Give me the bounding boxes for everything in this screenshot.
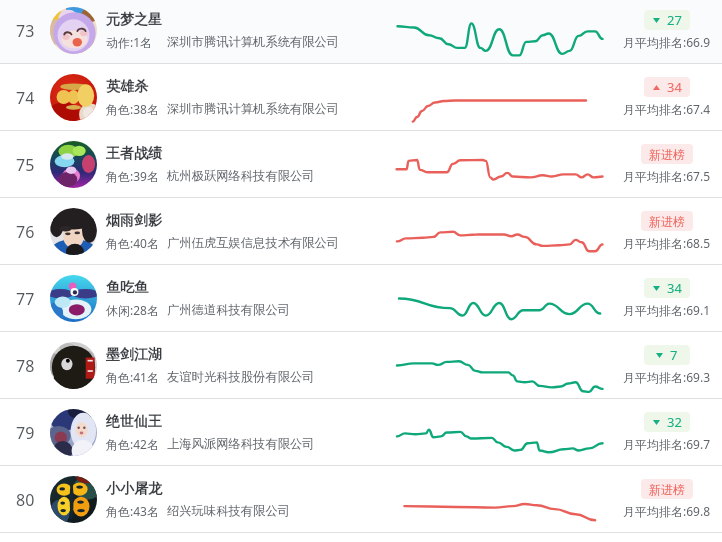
staticText: 月平均排名:68.5	[623, 235, 711, 251]
button[interactable]: 小小屠龙	[106, 480, 162, 498]
staticText: 角色:41名	[106, 369, 159, 385]
button[interactable]: 32	[644, 412, 690, 432]
staticText: 77	[16, 288, 35, 310]
staticText: 角色:38名	[106, 101, 159, 117]
button[interactable]: 绝世仙王	[106, 413, 162, 431]
button[interactable]: 墨剑江湖	[106, 346, 162, 364]
button[interactable]: 76	[0, 198, 722, 265]
staticText: 34	[667, 279, 682, 297]
button[interactable]: 绝世仙王 图标	[50, 409, 97, 456]
button[interactable]: 79	[0, 399, 722, 466]
button[interactable]: 新进榜	[641, 479, 693, 499]
button[interactable]: 元梦之星 图标	[50, 7, 97, 54]
staticText: 76	[16, 221, 35, 243]
button[interactable]: 75	[0, 131, 722, 198]
button[interactable]: 鱼吃鱼 图标	[50, 275, 97, 322]
staticText: 角色:43名	[106, 503, 159, 519]
button[interactable]: 34	[644, 278, 690, 298]
staticText: 79	[16, 422, 35, 444]
staticText: 月平均排名:67.5	[623, 168, 711, 184]
staticText: 上海风派网络科技有限公司	[167, 436, 315, 451]
button[interactable]: 78	[0, 332, 722, 399]
staticText: 友谊时光科技股份有限公司	[167, 369, 315, 384]
button[interactable]: 27	[644, 10, 690, 30]
button[interactable]: 墨剑江湖 图标	[50, 342, 97, 389]
staticText: 新进榜	[649, 482, 685, 497]
staticText: 墨剑江湖	[106, 346, 162, 364]
staticText: 广州伍虎互娱信息技术有限公司	[167, 235, 340, 250]
button[interactable]: 7	[644, 345, 690, 365]
staticText: 月平均排名:66.9	[623, 34, 711, 50]
button[interactable]: 73	[0, 0, 722, 64]
button[interactable]: 英雄杀	[106, 78, 148, 96]
staticText: 角色:42名	[106, 436, 159, 452]
staticText: 80	[16, 489, 35, 511]
button[interactable]: 新进榜	[641, 211, 693, 231]
staticText: 月平均排名:69.7	[623, 436, 711, 452]
staticText: 英雄杀	[106, 78, 148, 96]
staticText: 元梦之星	[106, 11, 162, 29]
staticText: 78	[16, 355, 35, 377]
staticText: 7	[670, 346, 678, 364]
staticText: 休闲:28名	[106, 302, 159, 318]
staticText: 烟雨剑影	[106, 212, 162, 230]
staticText: 动作:1名	[106, 34, 153, 50]
button[interactable]: 鱼吃鱼	[106, 279, 148, 297]
staticText: 绍兴玩味科技有限公司	[167, 503, 290, 518]
staticText: 27	[667, 11, 682, 29]
staticText: 王者战绩	[106, 145, 162, 163]
button[interactable]: 王者战绩 图标	[50, 141, 97, 188]
staticText: 74	[16, 87, 35, 109]
button[interactable]: 新进榜	[641, 144, 693, 164]
staticText: 鱼吃鱼	[106, 279, 148, 297]
staticText: 月平均排名:69.1	[623, 302, 711, 318]
staticText: 月平均排名:69.8	[623, 503, 711, 519]
button[interactable]: 74	[0, 64, 722, 131]
button[interactable]: 77	[0, 265, 722, 332]
staticText: 新进榜	[649, 147, 685, 162]
button[interactable]: 小小屠龙 图标	[50, 476, 97, 523]
staticText: 角色:40名	[106, 235, 159, 251]
staticText: 月平均排名:67.4	[623, 101, 711, 117]
staticText: 75	[16, 154, 35, 176]
button[interactable]: 王者战绩	[106, 145, 162, 163]
button[interactable]: 烟雨剑影	[106, 212, 162, 230]
button[interactable]: 34	[644, 77, 690, 97]
staticText: 小小屠龙	[106, 480, 162, 498]
staticText: 73	[16, 20, 35, 42]
staticText: 绝世仙王	[106, 413, 162, 431]
staticText: 广州德道科技有限公司	[167, 302, 290, 317]
staticText: 深圳市腾讯计算机系统有限公司	[167, 34, 340, 49]
staticText: 月平均排名:69.3	[623, 369, 711, 385]
staticText: 32	[667, 413, 682, 431]
button[interactable]: 烟雨剑影 图标	[50, 208, 97, 255]
staticText: 34	[667, 78, 682, 96]
staticText: 角色:39名	[106, 168, 159, 184]
button[interactable]: 80	[0, 466, 722, 533]
button[interactable]: 元梦之星	[106, 11, 162, 29]
staticText: 杭州极跃网络科技有限公司	[167, 168, 315, 183]
button[interactable]: 英雄杀 图标	[50, 74, 97, 121]
staticText: 新进榜	[649, 214, 685, 229]
staticText: 深圳市腾讯计算机系统有限公司	[167, 101, 340, 116]
